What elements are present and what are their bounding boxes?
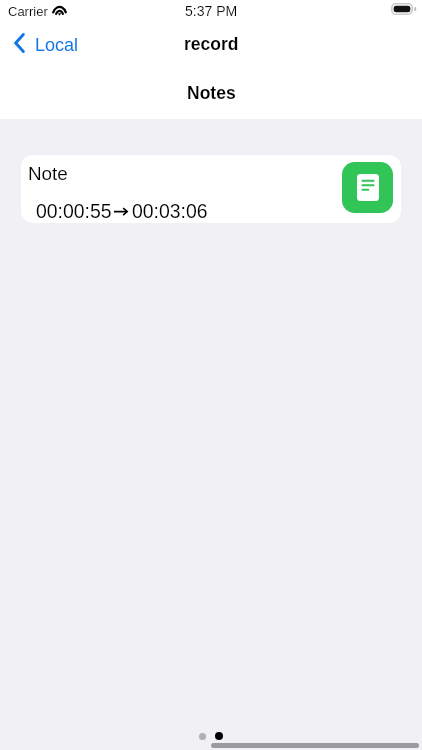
staticText: Notes xyxy=(187,83,236,103)
button[interactable]: Open note xyxy=(342,162,393,213)
staticText: 00:03:06 xyxy=(132,200,208,222)
staticText: Local xyxy=(35,35,79,55)
staticText: 5:37 PM xyxy=(185,3,238,19)
button[interactable]: Back to Local xyxy=(0,27,91,59)
staticText: Carrier xyxy=(8,4,48,19)
button[interactable]: Note xyxy=(21,155,401,223)
staticText: 00:00:55 xyxy=(36,200,112,222)
staticText: record xyxy=(184,34,239,54)
staticText: Note xyxy=(28,163,68,184)
